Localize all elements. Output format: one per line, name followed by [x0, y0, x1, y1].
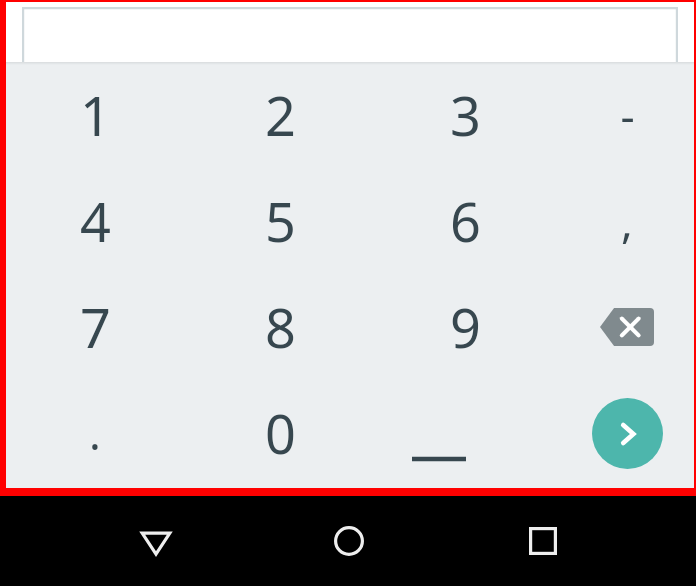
button[interactable]: - [558, 62, 696, 168]
other: Backspace [600, 308, 654, 346]
button[interactable]: 4 [2, 168, 188, 274]
button[interactable]: Recent apps [495, 496, 591, 586]
staticText: 2 [265, 78, 296, 152]
button[interactable]: 9 [372, 274, 558, 380]
button[interactable]: 5 [187, 168, 373, 274]
button[interactable]: . [2, 380, 188, 486]
button[interactable]: 8 [187, 274, 373, 380]
button[interactable]: Next [558, 380, 696, 486]
staticText: 5 [265, 184, 296, 258]
staticText: 1 [80, 78, 111, 152]
other: Next [592, 398, 663, 469]
staticText: - [620, 85, 635, 145]
button[interactable]: Back [108, 496, 204, 586]
staticText: 8 [265, 290, 296, 364]
button[interactable]: Home [301, 496, 397, 586]
staticText: 0 [265, 396, 296, 470]
staticText: 6 [450, 184, 481, 258]
button[interactable]: 2 [187, 62, 373, 168]
button[interactable]: 6 [372, 168, 558, 274]
staticText: , [621, 191, 633, 251]
button[interactable]: 1 [2, 62, 188, 168]
button[interactable] [22, 7, 678, 65]
button[interactable]: 0 [187, 380, 373, 486]
staticText: 7 [80, 290, 111, 364]
button[interactable] [372, 380, 558, 486]
staticText: . [89, 403, 101, 463]
staticText: 9 [450, 290, 481, 364]
button[interactable]: 7 [2, 274, 188, 380]
staticText: 4 [80, 184, 111, 258]
button[interactable]: Backspace [558, 274, 696, 380]
button[interactable]: , [558, 168, 696, 274]
staticText: 3 [450, 78, 481, 152]
button[interactable]: 3 [372, 62, 558, 168]
